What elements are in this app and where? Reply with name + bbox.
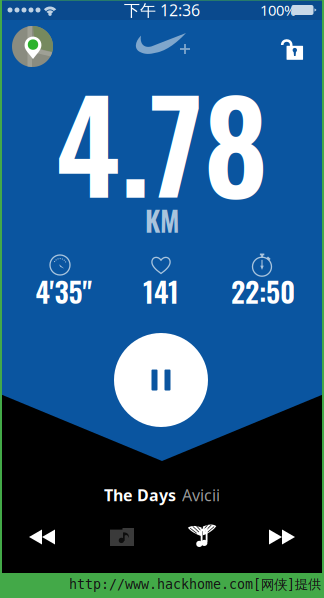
staticText: 22:50: [231, 270, 295, 312]
button[interactable]: Next track: [242, 514, 322, 560]
staticText: 4'35": [35, 270, 92, 312]
staticText: Avicii: [182, 484, 220, 506]
button[interactable]: Pause run: [114, 333, 208, 427]
staticText: http://www.hackhome.com[网侠]提供: [69, 576, 321, 593]
staticText: 100%: [260, 0, 296, 20]
staticText: The Days: [104, 484, 176, 506]
button[interactable]: Previous track: [2, 514, 82, 560]
staticText: KM: [145, 199, 179, 241]
button[interactable]: PowerSong: [162, 514, 242, 560]
button[interactable]: Map: [12, 26, 53, 67]
staticText: 4.78: [55, 48, 268, 234]
staticText: 下午 12:36: [124, 0, 200, 21]
button[interactable]: Lock screen: [276, 32, 306, 62]
staticText: 141: [143, 270, 179, 312]
button[interactable]: Music library: [82, 514, 162, 560]
button[interactable]: The Days: [42, 485, 282, 505]
